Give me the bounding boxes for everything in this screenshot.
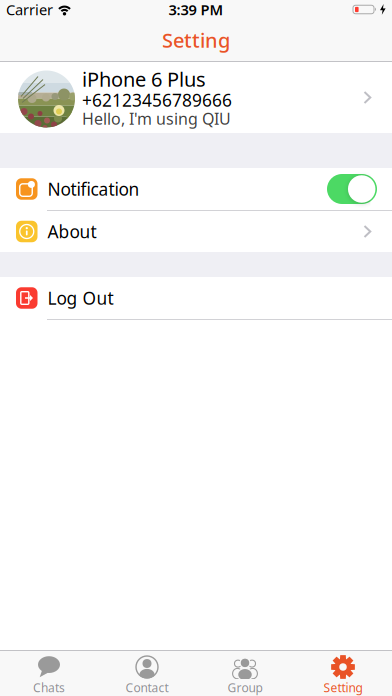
button[interactable]: Group [196,654,294,694]
staticText: Chats [33,679,65,695]
staticText: Notification [47,177,139,200]
staticText: +62123456789666 [82,88,232,111]
staticText: 3:39 PM [168,0,223,19]
staticText: Setting [162,27,230,53]
button[interactable]: Log Out [0,277,392,319]
button[interactable]: Chats [0,654,98,694]
button[interactable]: About [0,211,392,252]
button[interactable]: Notification [0,168,392,210]
staticText: Hello, I'm using QIU [82,108,231,129]
staticText: Contact [125,679,168,695]
button[interactable]: Contact [98,654,196,694]
staticText: iPhone 6 Plus [82,66,206,92]
staticText: Group [227,679,262,695]
staticText: About [47,220,96,243]
button[interactable]: iPhone 6 Plus [0,62,392,133]
staticText: Log Out [47,286,113,309]
staticText: Setting [323,679,362,695]
staticText: Carrier [6,0,53,19]
button[interactable]: Setting [294,654,392,694]
